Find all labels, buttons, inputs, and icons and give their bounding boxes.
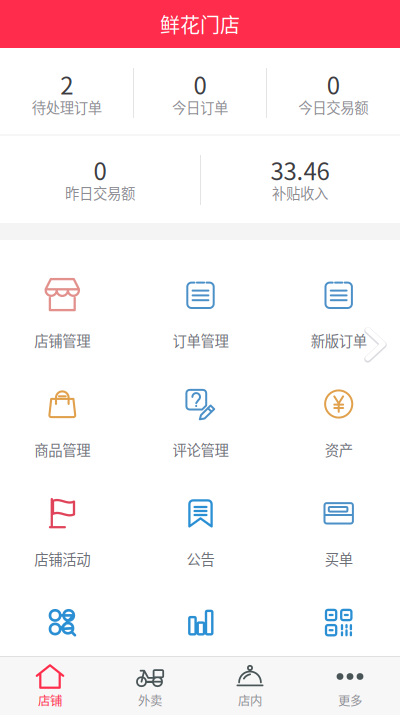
button[interactable]: 店铺管理 xyxy=(0,276,131,348)
staticText: 外卖 xyxy=(138,691,162,709)
button[interactable]: 商品管理 xyxy=(0,385,131,457)
button[interactable]: 外卖 xyxy=(100,663,200,706)
button[interactable]: 公告 xyxy=(131,494,270,567)
staticText: 订单管理 xyxy=(172,330,228,351)
staticText: 买单 xyxy=(325,548,353,569)
staticText: 资产 xyxy=(325,439,353,460)
button[interactable]: 评论管理 xyxy=(131,385,270,457)
button[interactable]: 0 xyxy=(133,72,267,115)
staticText: 今日订单 xyxy=(172,97,228,117)
button[interactable]: 新版订单 xyxy=(270,276,400,348)
button[interactable] xyxy=(270,604,400,676)
staticText: 公告 xyxy=(186,548,214,569)
staticText: 33.46 xyxy=(270,152,329,187)
staticText: 0 xyxy=(193,67,206,101)
button[interactable]: 0 xyxy=(0,158,200,201)
button[interactable]: 店铺活动 xyxy=(0,494,131,567)
staticText: 昨日交易额 xyxy=(65,182,135,203)
staticText: 今日交易额 xyxy=(298,97,368,117)
button[interactable]: 更多 xyxy=(300,663,400,706)
button[interactable]: 2 xyxy=(0,72,133,115)
staticText: 商品管理 xyxy=(34,439,90,460)
button[interactable]: 0 xyxy=(267,72,400,115)
staticText: 店铺管理 xyxy=(34,330,90,351)
button[interactable]: 33.46 xyxy=(200,158,400,201)
staticText: 0 xyxy=(93,152,106,187)
button[interactable] xyxy=(131,604,270,676)
staticText: 0 xyxy=(327,67,340,101)
staticText: 店铺活动 xyxy=(34,548,90,569)
staticText: 更多 xyxy=(338,691,362,709)
button[interactable]: 下一页 xyxy=(365,327,386,361)
button[interactable]: 买单 xyxy=(270,494,400,567)
button[interactable]: 资产 xyxy=(270,385,400,457)
staticText: 评论管理 xyxy=(172,439,228,460)
staticText: 补贴收入 xyxy=(272,182,328,203)
staticText: 店内 xyxy=(238,691,262,709)
button[interactable]: 店铺 xyxy=(0,663,100,706)
staticText: 鲜花门店 xyxy=(160,9,240,38)
button[interactable]: 订单管理 xyxy=(131,276,270,348)
staticText: 2 xyxy=(60,67,73,101)
button[interactable] xyxy=(0,604,131,676)
staticText: 待处理订单 xyxy=(32,97,102,117)
staticText: 店铺 xyxy=(38,691,62,709)
staticText: 新版订单 xyxy=(311,330,367,351)
button[interactable]: 店内 xyxy=(200,663,300,706)
